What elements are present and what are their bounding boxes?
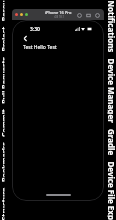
button[interactable]: Close — [15, 13, 18, 16]
staticText: iPhone 16 Pro — [45, 10, 72, 15]
button[interactable]: Record screen — [94, 12, 100, 18]
button[interactable]: Rotate — [76, 12, 82, 18]
staticText: Test Hello Test — [23, 44, 57, 51]
button[interactable]: Screenshot — [85, 12, 91, 18]
button[interactable]: Minimise — [20, 13, 23, 16]
staticText: Notifications Device Manager Gradle Devi… — [107, 0, 116, 220]
staticText: iOS 18.1 — [54, 15, 64, 19]
button[interactable]: Back — [21, 34, 30, 43]
button[interactable]: Zoom — [25, 13, 28, 16]
staticText: Structure Bookmarks Commit Pull Requests… — [0, 0, 4, 220]
staticText: 3:30 — [30, 26, 40, 33]
